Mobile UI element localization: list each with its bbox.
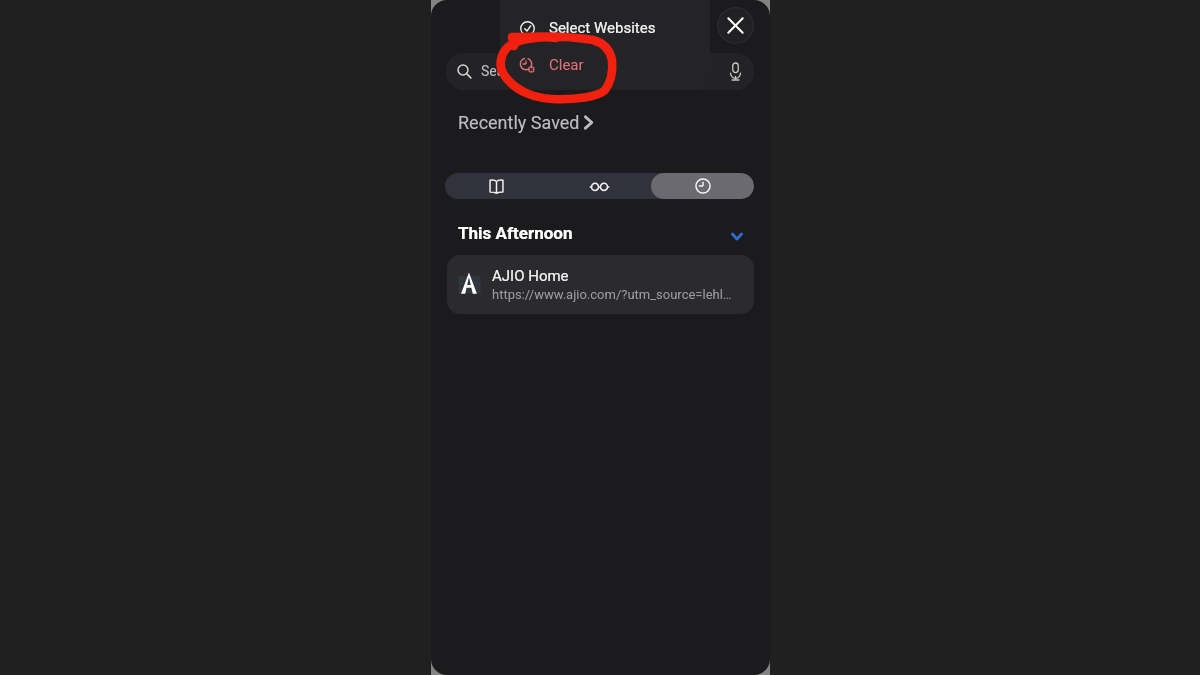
button[interactable]: Clear: [500, 46, 710, 84]
button[interactable]: Close: [717, 7, 754, 44]
button[interactable]: AJIO Home: [447, 255, 754, 314]
button[interactable]: Reading list: [548, 173, 651, 199]
staticText: Select Websites: [549, 19, 656, 37]
button[interactable]: Search or enter website: [446, 53, 754, 90]
staticText: Recently Saved: [458, 112, 580, 133]
button[interactable]: This Afternoon: [458, 223, 743, 243]
button[interactable]: Select Websites: [500, 9, 710, 47]
staticText: Clear: [549, 56, 584, 74]
button[interactable]: History: [651, 173, 754, 199]
button[interactable]: Voice search: [724, 61, 746, 83]
button[interactable]: Bookmarks: [445, 173, 548, 199]
button[interactable]: Recently Saved: [458, 112, 594, 133]
staticText: Search or enter website: [481, 63, 628, 79]
staticText: This Afternoon: [458, 223, 573, 243]
staticText: https://www.ajio.com/?utm_source=lehl…: [492, 287, 732, 302]
staticText: AJIO Home: [492, 267, 569, 285]
